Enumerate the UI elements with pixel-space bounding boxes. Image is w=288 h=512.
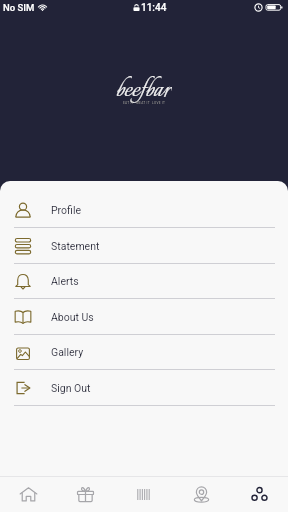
button[interactable]: Gifts [57,477,114,512]
staticText: Alerts [51,275,79,287]
button[interactable]: Profile [0,192,288,228]
button[interactable]: Sign Out [0,370,288,406]
staticText: beefbar [116,71,172,105]
button[interactable]: Gallery [0,334,288,370]
staticText: No SIM [3,2,35,13]
staticText: Profile [51,204,82,216]
staticText: EAT IT MEAT IT LOVE IT [123,101,166,105]
staticText: Sign Out [51,382,91,394]
staticText: Gallery [51,346,84,358]
staticText: Statement [51,240,100,252]
button[interactable]: Card [114,477,172,512]
staticText: About Us [51,311,94,323]
button[interactable]: Locations [172,477,230,512]
button[interactable]: About Us [0,299,288,335]
button[interactable]: More [230,477,288,512]
button[interactable]: Home [0,477,57,512]
button[interactable]: Statement [0,228,288,264]
staticText: 11:44 [141,2,167,14]
button[interactable]: Alerts [0,263,288,299]
